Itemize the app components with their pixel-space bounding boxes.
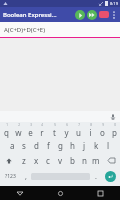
staticText: 5 xyxy=(54,123,56,127)
button[interactable]: 0 xyxy=(108,122,120,138)
button[interactable]: a xyxy=(6,138,18,153)
button[interactable]: g xyxy=(54,138,66,153)
staticText: s xyxy=(22,140,26,151)
staticText: , xyxy=(25,172,27,182)
staticText: b xyxy=(70,155,75,166)
staticText: n xyxy=(82,155,87,166)
staticText: 8:19 xyxy=(110,1,118,6)
button[interactable]: f xyxy=(42,138,54,153)
button[interactable]: v xyxy=(54,153,66,168)
staticText: r xyxy=(40,127,44,138)
button[interactable]: Back xyxy=(0,186,40,200)
staticText: x xyxy=(34,155,39,166)
button[interactable]: Stop xyxy=(99,11,109,18)
staticText: o xyxy=(100,127,105,138)
button[interactable]: , xyxy=(20,168,31,185)
staticText: l xyxy=(107,140,110,151)
button[interactable]: A(C+D)+D(C+E) xyxy=(0,22,120,38)
staticText: i xyxy=(89,127,92,138)
button[interactable]: 4 xyxy=(36,122,48,138)
button[interactable]: Home xyxy=(40,186,80,200)
button[interactable]: Step xyxy=(87,10,97,20)
staticText: u xyxy=(76,127,81,138)
button[interactable]: z xyxy=(18,153,30,168)
staticText: 9 xyxy=(102,123,104,127)
button[interactable]: 2 xyxy=(12,122,24,138)
staticText: 1 xyxy=(6,123,8,127)
staticText: 3 xyxy=(30,123,32,127)
button[interactable]: Shift xyxy=(0,153,18,168)
staticText: 4 xyxy=(41,123,43,127)
staticText: v xyxy=(58,155,63,166)
button[interactable]: m xyxy=(90,153,102,168)
button[interactable]: c xyxy=(42,153,54,168)
button[interactable]: n xyxy=(78,153,90,168)
staticText: y xyxy=(64,127,69,138)
button[interactable]: j xyxy=(78,138,90,153)
button[interactable]: l xyxy=(102,138,114,153)
staticText: a xyxy=(10,140,15,151)
button[interactable]: Recents xyxy=(80,186,120,200)
staticText: 0 xyxy=(114,123,116,127)
staticText: ?123 xyxy=(5,173,16,180)
staticText: c xyxy=(46,155,50,166)
staticText: t xyxy=(53,127,56,138)
button[interactable]: 9 xyxy=(96,122,108,138)
button[interactable]: ?123 xyxy=(0,168,20,185)
staticText: z xyxy=(22,155,26,166)
button[interactable]: x xyxy=(30,153,42,168)
staticText: . xyxy=(95,172,97,182)
button[interactable]: . xyxy=(90,168,101,185)
button[interactable]: h xyxy=(66,138,78,153)
button[interactable]: 5 xyxy=(48,122,60,138)
staticText: m xyxy=(92,155,100,166)
staticText: q xyxy=(4,127,9,138)
staticText: f xyxy=(47,140,50,151)
button[interactable]: k xyxy=(90,138,102,153)
staticText: e xyxy=(28,127,33,138)
staticText: g xyxy=(58,140,63,151)
staticText: h xyxy=(70,140,75,151)
button[interactable]: s xyxy=(18,138,30,153)
staticText: p xyxy=(112,127,117,138)
button[interactable]: Enter xyxy=(101,168,120,185)
staticText: j xyxy=(83,140,86,151)
button[interactable]: 6 xyxy=(60,122,72,138)
button[interactable]: Backspace xyxy=(102,153,120,168)
button[interactable]: d xyxy=(30,138,42,153)
button[interactable]: b xyxy=(66,153,78,168)
button[interactable]: 7 xyxy=(72,122,84,138)
staticText: w xyxy=(15,127,22,138)
staticText: 7 xyxy=(78,123,80,127)
staticText: 6 xyxy=(66,123,68,127)
staticText: Boolean Expressi… xyxy=(3,11,75,19)
staticText: d xyxy=(34,140,39,151)
button[interactable]: Play xyxy=(75,10,85,20)
button[interactable]: 1 xyxy=(0,122,12,138)
staticText: 8 xyxy=(90,123,92,127)
button[interactable]: More options xyxy=(111,8,117,21)
button[interactable]: 8 xyxy=(84,122,96,138)
staticText: 2 xyxy=(18,123,20,127)
staticText: k xyxy=(94,140,99,151)
button[interactable]: Voice input xyxy=(110,114,116,120)
staticText: A(C+D)+D(C+E) xyxy=(4,26,46,34)
button[interactable]: 3 xyxy=(24,122,36,138)
